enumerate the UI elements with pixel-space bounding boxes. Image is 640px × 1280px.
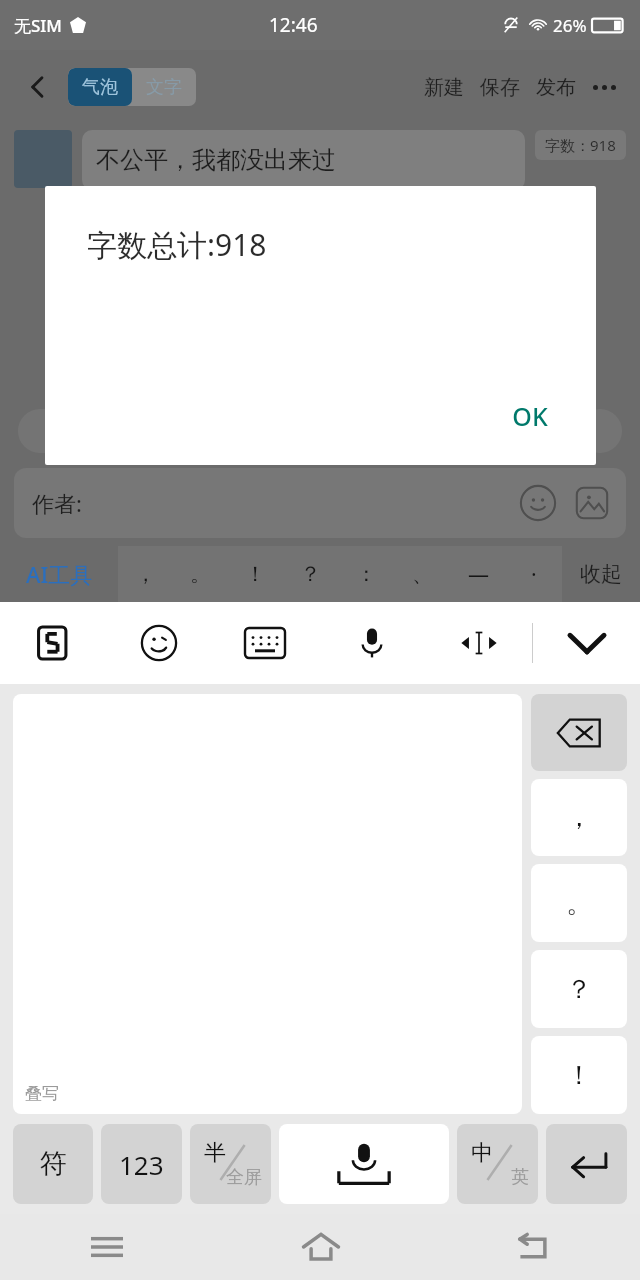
staticText: 无SIM	[14, 14, 62, 37]
staticText: 发布	[536, 75, 576, 100]
button[interactable]: 文字	[132, 68, 196, 106]
button[interactable]: 。	[173, 546, 228, 602]
staticText: 作者:	[32, 488, 82, 518]
button[interactable]: Sogou menu	[0, 602, 106, 684]
staticText: ，	[135, 561, 156, 587]
button[interactable]: 发布	[536, 75, 576, 100]
staticText: AI工具	[26, 559, 93, 589]
button[interactable]: 更换	[18, 409, 108, 453]
staticText: 12:46	[269, 12, 318, 38]
button[interactable]: 收起	[562, 546, 640, 602]
staticText: ！	[566, 1059, 592, 1092]
button[interactable]: 新建	[424, 75, 464, 100]
button[interactable]: Backspace	[531, 694, 627, 771]
staticText: ？	[566, 973, 592, 1006]
staticText: 新建	[424, 75, 464, 100]
button[interactable]: ？	[283, 546, 338, 602]
button[interactable]: Back	[16, 65, 60, 109]
button[interactable]: OK	[494, 389, 566, 443]
staticText: 文字	[146, 76, 182, 99]
button[interactable]: ，	[118, 546, 173, 602]
staticText: 叠写	[25, 1083, 59, 1104]
button[interactable]: 保存	[480, 75, 520, 100]
staticText: 全屏	[226, 1166, 262, 1189]
staticText: 。	[566, 887, 592, 920]
staticText: ·	[531, 560, 537, 589]
button[interactable]: ！	[228, 546, 283, 602]
staticText: 字数总计:918	[87, 224, 267, 265]
button[interactable]: ，	[531, 779, 627, 856]
staticText: 保存	[480, 75, 520, 100]
staticText: ：	[356, 561, 377, 587]
button[interactable]: Keyboard layout	[212, 602, 318, 684]
button[interactable]: Back	[427, 1214, 640, 1280]
staticText: 不公平，我都没出来过	[96, 145, 336, 175]
button[interactable]: Space, voice input	[279, 1124, 449, 1204]
staticText: ！	[245, 561, 266, 587]
button[interactable]: 气泡	[68, 68, 132, 106]
staticText: 、	[412, 561, 433, 587]
button[interactable]: Add	[578, 409, 622, 453]
staticText: ，	[566, 801, 592, 834]
button[interactable]: Emoji	[106, 602, 212, 684]
staticText: 收起	[580, 561, 622, 587]
staticText: 中	[471, 1139, 493, 1167]
button[interactable]: Recent apps	[0, 1214, 214, 1280]
button[interactable]: 符	[13, 1124, 93, 1204]
staticText: 符	[40, 1147, 67, 1181]
staticText: 半	[204, 1139, 226, 1167]
button[interactable]: Enter	[546, 1124, 627, 1204]
button[interactable]: —	[450, 546, 506, 602]
button[interactable]: 中	[457, 1124, 538, 1204]
button[interactable]: Emoji	[518, 483, 558, 523]
button[interactable]: More options	[584, 67, 624, 107]
staticText: 26%	[553, 14, 587, 37]
staticText: 英	[511, 1166, 529, 1189]
button[interactable]: Voice input	[318, 602, 425, 684]
staticText: 气泡	[82, 76, 118, 99]
button[interactable]: ：	[338, 546, 394, 602]
button[interactable]: AI工具	[0, 546, 118, 602]
staticText: 123	[119, 1147, 164, 1182]
button[interactable]: 123	[101, 1124, 182, 1204]
staticText: ？	[300, 561, 321, 587]
button[interactable]: 。	[531, 864, 627, 942]
button[interactable]: ·	[506, 546, 562, 602]
button[interactable]: Move cursor	[425, 602, 532, 684]
button[interactable]: Home	[214, 1214, 427, 1280]
staticText: OK	[512, 399, 548, 433]
staticText: —	[468, 560, 489, 589]
staticText: 。	[190, 561, 211, 587]
button[interactable]: ！	[531, 1036, 627, 1114]
button[interactable]: ？	[531, 950, 627, 1028]
staticText: 字数：918	[545, 135, 616, 155]
button[interactable]: Hide keyboard	[533, 602, 640, 684]
button[interactable]: Insert image	[572, 483, 612, 523]
button[interactable]: 半	[190, 1124, 271, 1204]
